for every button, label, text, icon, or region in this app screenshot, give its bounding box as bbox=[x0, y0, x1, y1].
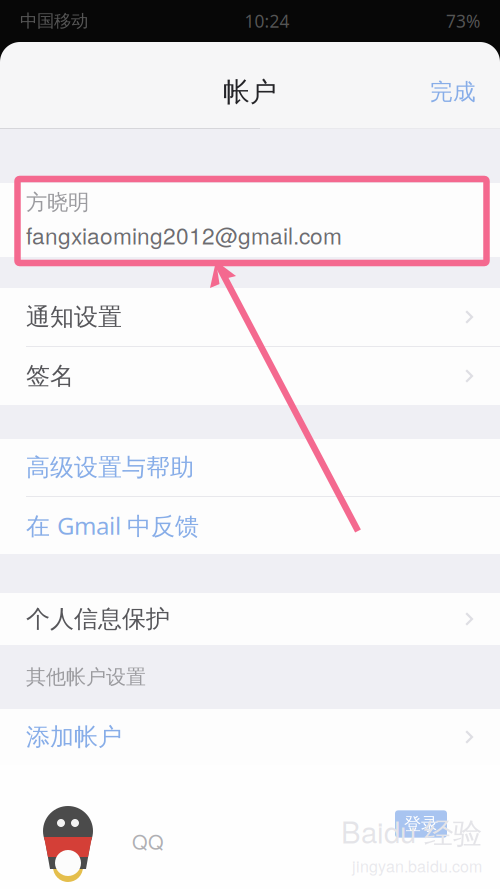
staticText: 登录 bbox=[404, 813, 438, 835]
staticText: QQ bbox=[132, 827, 164, 855]
staticText: 方晓明 bbox=[26, 189, 89, 215]
button[interactable]: 完成 bbox=[422, 70, 484, 114]
staticText: 添加帐户 bbox=[26, 722, 122, 752]
staticText: 高级设置与帮助 bbox=[26, 453, 194, 482]
staticText: jingyan.baidu.com bbox=[352, 854, 482, 877]
staticText: 通知设置 bbox=[26, 302, 122, 332]
button[interactable]: 通知设置 bbox=[0, 288, 500, 346]
staticText: Baidu 经验 bbox=[341, 810, 482, 852]
staticText: 签名 bbox=[26, 361, 74, 391]
staticText: 中国移动 bbox=[20, 10, 88, 32]
button[interactable]: 个人信息保护 bbox=[0, 593, 500, 645]
staticText: 10:24 bbox=[244, 9, 289, 32]
staticText: 在 Gmail 中反馈 bbox=[26, 510, 199, 541]
staticText: 帐户 bbox=[223, 76, 277, 108]
staticText: 其他帐户设置 bbox=[26, 665, 146, 689]
staticText: 73% bbox=[446, 9, 480, 32]
button[interactable]: QQ bbox=[0, 765, 500, 889]
button[interactable]: 在 Gmail 中反馈 bbox=[0, 497, 500, 554]
button[interactable]: 签名 bbox=[0, 347, 500, 405]
button[interactable]: 添加帐户 bbox=[0, 709, 500, 765]
button[interactable]: 高级设置与帮助 bbox=[0, 439, 500, 496]
staticText: 个人信息保护 bbox=[26, 604, 170, 634]
staticText: 完成 bbox=[430, 78, 476, 106]
staticText: fangxiaoming2012@gmail.com bbox=[26, 218, 342, 251]
button[interactable]: 方晓明 bbox=[0, 183, 500, 257]
